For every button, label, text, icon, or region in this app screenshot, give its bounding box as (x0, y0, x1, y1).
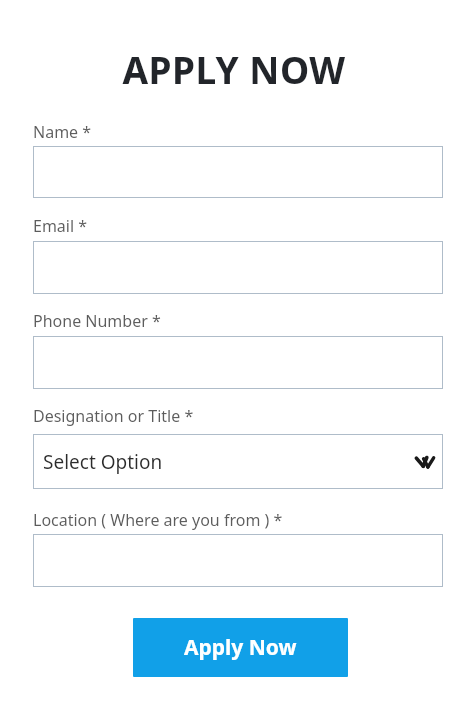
button[interactable]: Email input (33, 241, 443, 294)
staticText: Phone Number * (33, 310, 161, 332)
button[interactable]: Select Option (33, 434, 443, 489)
button[interactable]: Phone number input (33, 336, 443, 389)
button[interactable]: Location input (33, 534, 443, 587)
staticText: Apply Now (184, 633, 297, 662)
button[interactable]: Apply Now (133, 618, 348, 677)
staticText: Location ( Where are you from ) * (33, 509, 283, 531)
staticText: Name * (33, 121, 92, 143)
staticText: Select Option (43, 449, 163, 475)
button[interactable]: Name input (33, 146, 443, 198)
staticText: Designation or Title * (33, 405, 194, 427)
staticText: Email * (33, 215, 88, 237)
staticText: APPLY NOW (0, 44, 468, 94)
